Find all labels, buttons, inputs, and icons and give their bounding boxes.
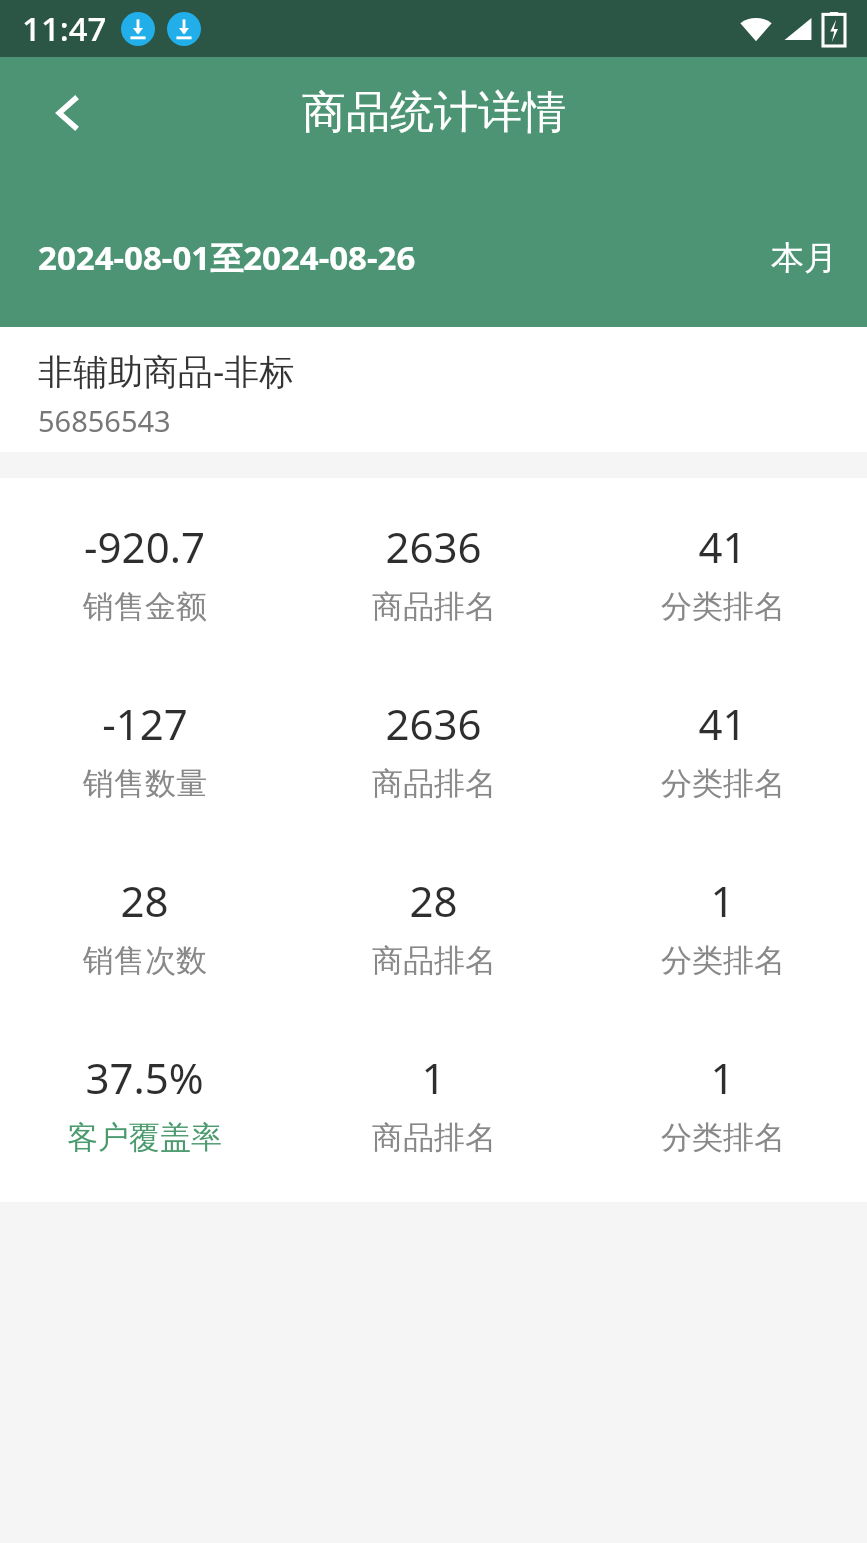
button[interactable]: 本月 [771,237,837,279]
button[interactable]: Back [30,75,106,151]
button[interactable]: 非辅助商品-非标 [0,327,867,452]
button[interactable]: 41 [578,691,867,807]
button[interactable]: 1 [578,1045,867,1161]
staticText: 1 [710,1049,735,1106]
staticText: 28 [120,872,169,929]
button[interactable]: 2636 [289,514,578,630]
button[interactable]: 1 [578,868,867,984]
staticText: 2636 [385,695,482,752]
staticText: 1 [421,1049,446,1106]
button[interactable]: -920.7 [0,514,289,630]
button[interactable]: 28 [289,868,578,984]
staticText: 11:47 [22,6,107,51]
staticText: 销售金额 [83,587,207,626]
staticText: 销售次数 [83,941,207,980]
button[interactable]: 28 [0,868,289,984]
staticText: 1 [710,872,735,929]
staticText: 分类排名 [661,587,785,626]
staticText: -127 [102,695,188,752]
staticText: 商品排名 [372,1118,496,1157]
staticText: 商品排名 [372,764,496,803]
staticText: 28 [409,872,458,929]
staticText: 分类排名 [661,764,785,803]
staticText: 本月 [771,237,837,279]
staticText: 商品排名 [372,587,496,626]
staticText: 销售数量 [83,764,207,803]
button[interactable]: 1 [289,1045,578,1161]
staticText: 非辅助商品-非标 [38,347,295,395]
staticText: 56856543 [38,401,171,440]
button[interactable]: 2636 [289,691,578,807]
staticText: 分类排名 [661,1118,785,1157]
staticText: 2024-08-01至2024-08-26 [38,235,416,280]
staticText: 41 [698,695,747,752]
button[interactable]: 41 [578,514,867,630]
button[interactable]: 37.5% [0,1045,289,1161]
staticText: 分类排名 [661,941,785,980]
staticText: 41 [698,518,747,575]
button[interactable]: -127 [0,691,289,807]
staticText: 2636 [385,518,482,575]
staticText: 商品排名 [372,941,496,980]
staticText: 37.5% [85,1049,204,1106]
staticText: 客户覆盖率 [67,1118,222,1157]
staticText: 商品统计详情 [302,85,566,140]
staticText: -920.7 [84,518,205,575]
